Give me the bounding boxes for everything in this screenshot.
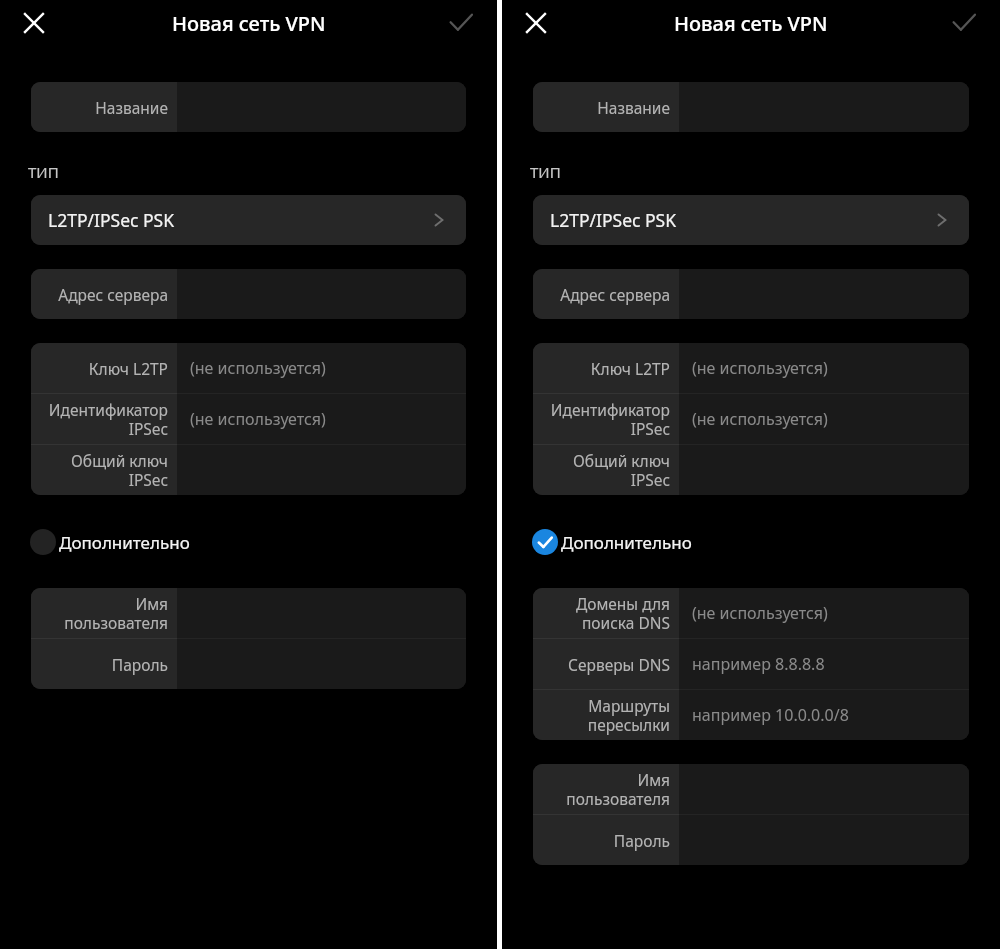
staticText: (не используется) — [692, 357, 828, 379]
button[interactable]: Маршруты пересылки — [533, 690, 969, 740]
button[interactable]: L2TP/IPSec PSK — [31, 195, 466, 245]
staticText: Название — [597, 97, 670, 118]
staticText: Адрес сервера — [58, 284, 168, 305]
button[interactable]: Идентификатор IPSec — [533, 394, 969, 444]
staticText: Дополнительно — [59, 531, 190, 554]
button[interactable]: Название — [31, 82, 466, 132]
button[interactable]: Дополнительно — [30, 522, 467, 562]
button[interactable]: Серверы DNS — [533, 639, 969, 689]
button[interactable]: Адрес сервера — [533, 269, 969, 319]
button[interactable]: Save — [943, 2, 985, 44]
staticText: Общий ключ IPSec — [71, 450, 168, 490]
staticText: L2TP/IPSec PSK — [550, 208, 676, 232]
staticText: Общий ключ IPSec — [573, 450, 670, 490]
staticText: например 10.0.0.0/8 — [692, 704, 849, 726]
staticText: Адрес сервера — [560, 284, 670, 305]
staticText: Идентификатор IPSec — [48, 399, 168, 439]
button[interactable]: Имя пользователя — [533, 764, 969, 814]
button[interactable]: Ключ L2TP — [533, 343, 969, 393]
staticText: Домены для поиска DNS — [575, 593, 670, 633]
button[interactable]: Close — [515, 2, 557, 44]
button[interactable]: Пароль — [533, 815, 969, 865]
staticText: ТИП — [530, 162, 561, 182]
staticText: (не используется) — [190, 408, 326, 430]
staticText: Серверы DNS — [568, 654, 670, 675]
button[interactable]: Пароль — [31, 639, 466, 689]
staticText: L2TP/IPSec PSK — [48, 208, 174, 232]
button[interactable]: Save — [440, 2, 482, 44]
button[interactable]: Общий ключ IPSec — [533, 445, 969, 495]
staticText: Ключ L2TP — [88, 358, 168, 379]
staticText: Название — [95, 97, 168, 118]
button[interactable]: Ключ L2TP — [31, 343, 466, 393]
staticText: Имя пользователя — [566, 769, 670, 809]
staticText: Новая сеть VPN — [674, 10, 828, 37]
staticText: Ключ L2TP — [590, 358, 670, 379]
staticText: Пароль — [111, 654, 168, 675]
button[interactable]: Адрес сервера — [31, 269, 466, 319]
staticText: Пароль — [613, 830, 670, 851]
staticText: ТИП — [28, 162, 59, 182]
button[interactable]: Домены для поиска DNS — [533, 588, 969, 638]
button[interactable]: Имя пользователя — [31, 588, 466, 638]
staticText: Идентификатор IPSec — [550, 399, 670, 439]
button[interactable]: Общий ключ IPSec — [31, 445, 466, 495]
staticText: (не используется) — [190, 357, 326, 379]
button[interactable]: L2TP/IPSec PSK — [533, 195, 969, 245]
button[interactable]: Название — [533, 82, 969, 132]
staticText: Маршруты пересылки — [587, 695, 670, 735]
staticText: Новая сеть VPN — [172, 10, 326, 37]
staticText: (не используется) — [692, 408, 828, 430]
staticText: Имя пользователя — [64, 593, 168, 633]
button[interactable]: Дополнительно — [532, 522, 970, 562]
staticText: (не используется) — [692, 602, 828, 624]
staticText: Дополнительно — [561, 531, 692, 554]
staticText: например 8.8.8.8 — [692, 653, 825, 675]
button[interactable]: Close — [13, 2, 55, 44]
button[interactable]: Идентификатор IPSec — [31, 394, 466, 444]
